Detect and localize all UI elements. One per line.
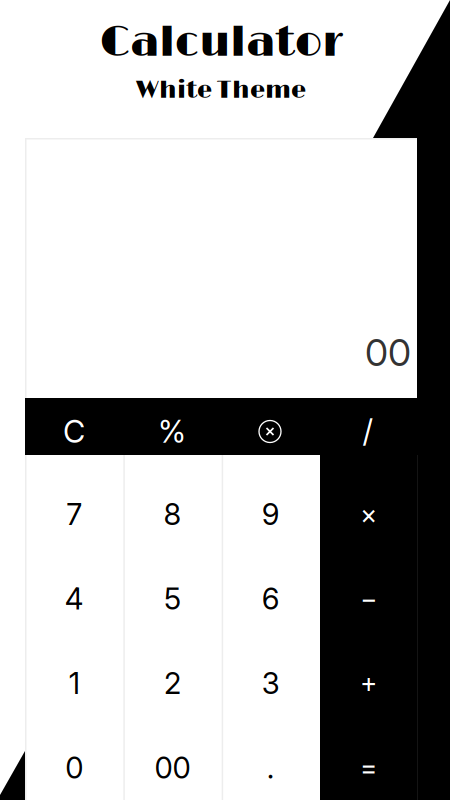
button[interactable]: . [222,725,320,800]
button[interactable]: 5 [123,556,222,641]
button[interactable]: Percent [123,398,221,455]
button[interactable]: 3 [222,641,320,725]
staticText: 00 [154,750,190,785]
button[interactable]: Subtract [320,556,417,641]
staticText: % [158,413,186,450]
button[interactable]: Backspace [221,398,319,455]
staticText: 6 [262,581,280,616]
button[interactable]: 9 [222,472,320,556]
button[interactable]: 1 [25,641,123,725]
staticText: Calculator [100,17,342,69]
button[interactable]: 0 [25,725,123,800]
staticText: C [63,413,85,450]
button[interactable]: Equals [320,725,417,800]
staticText: = [360,752,377,784]
staticText: / [362,413,373,450]
staticText: × [360,498,377,530]
button[interactable]: 00 [123,725,222,800]
button[interactable]: Divide [319,398,417,455]
button[interactable]: 2 [123,641,222,725]
staticText: 8 [163,496,181,532]
button[interactable]: 4 [25,556,123,641]
staticText: 7 [66,496,82,532]
button[interactable]: Multiply [320,472,417,556]
staticText: 0 [65,750,83,785]
staticText: 4 [65,581,84,616]
staticText: 00 [365,330,411,375]
staticText: − [360,583,377,615]
staticText: White Theme [136,76,306,105]
staticText: 3 [262,665,280,701]
button[interactable]: 6 [222,556,320,641]
staticText: + [360,667,377,699]
staticText: 9 [262,496,280,532]
staticText: 5 [164,581,181,616]
staticText: 2 [164,665,181,701]
button[interactable]: Clear [25,398,123,455]
button[interactable]: 7 [25,472,123,556]
button[interactable]: 8 [123,472,222,556]
staticText: 1 [69,665,80,701]
staticText: . [267,750,275,785]
button[interactable]: Add [320,641,417,725]
